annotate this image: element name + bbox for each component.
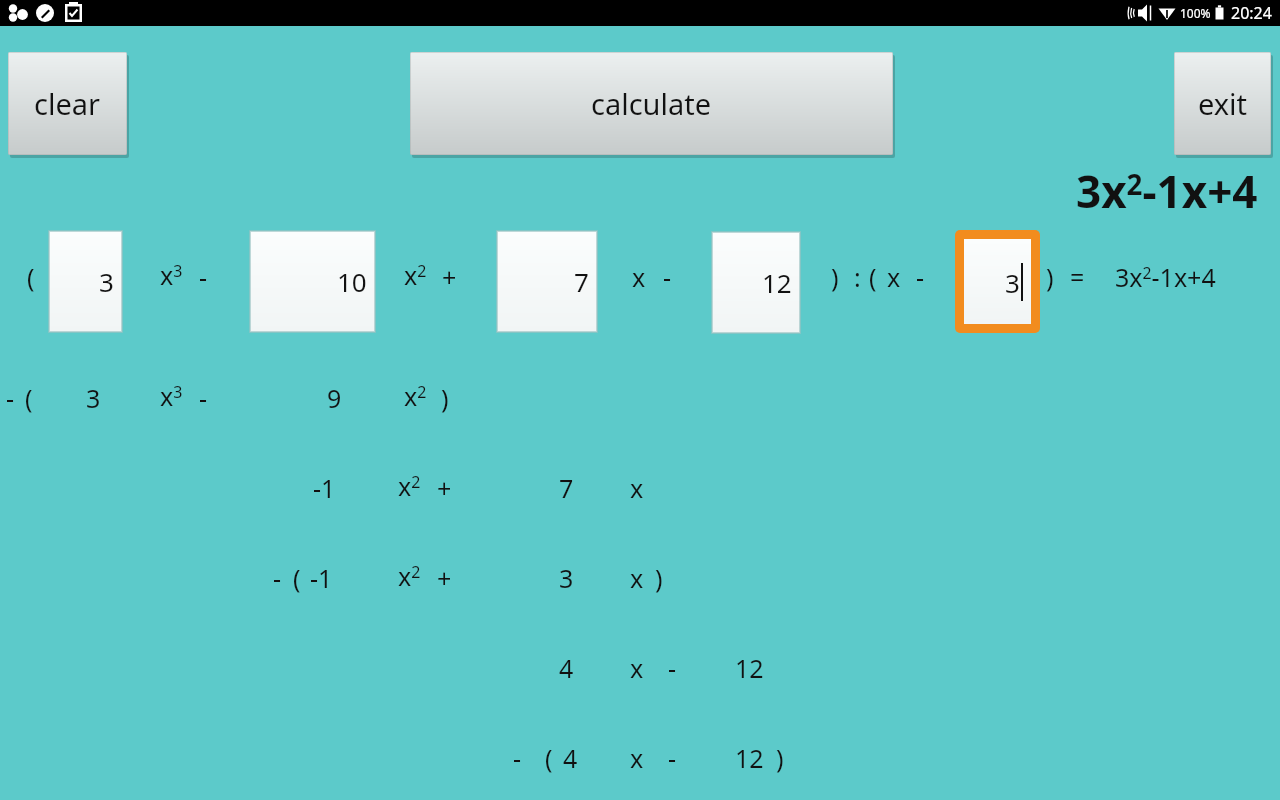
staticText: calculate — [591, 84, 712, 123]
button[interactable]: exit — [1174, 52, 1271, 155]
button[interactable]: 10 — [250, 231, 375, 332]
staticText: ( — [25, 381, 33, 415]
staticText: 9 — [327, 381, 342, 415]
staticText: = — [1070, 260, 1085, 294]
staticText: : — [854, 260, 861, 294]
staticText: ( — [27, 260, 35, 294]
staticText: ) — [441, 381, 449, 415]
staticText: 3 — [559, 561, 574, 595]
staticText: x2 — [398, 469, 421, 503]
staticText: x2 — [404, 379, 427, 413]
staticText: ( — [293, 561, 301, 595]
staticText: - — [199, 260, 208, 294]
staticText: 12 — [762, 265, 792, 300]
staticText: ) — [655, 561, 663, 595]
button[interactable]: clear — [8, 52, 127, 155]
staticText: 10 — [337, 264, 367, 299]
staticText: ) — [1046, 260, 1054, 294]
staticText: x — [630, 561, 644, 595]
staticText: -1 — [310, 561, 333, 595]
button[interactable]: calculate — [410, 52, 893, 155]
staticText: - — [199, 381, 208, 415]
staticText: - — [663, 260, 672, 294]
staticText: 3 — [86, 381, 101, 415]
staticText: ) — [776, 741, 784, 775]
staticText: - — [6, 381, 15, 415]
staticText: 3 — [1005, 265, 1020, 300]
staticText: x3 — [160, 258, 183, 292]
staticText: ( — [545, 741, 553, 775]
staticText: 3 — [99, 264, 114, 299]
button[interactable]: 7 — [497, 231, 597, 332]
button[interactable]: 12 — [712, 232, 800, 333]
staticText: - — [916, 260, 925, 294]
staticText: - — [668, 651, 677, 685]
button[interactable]: 3 — [49, 231, 122, 332]
staticText: + — [442, 260, 457, 294]
button[interactable]: 3 — [955, 230, 1040, 333]
staticText: 4 — [563, 741, 578, 775]
staticText: - — [273, 561, 282, 595]
staticText: clear — [34, 84, 101, 123]
staticText: x — [887, 260, 901, 294]
staticText: 12 — [735, 741, 764, 775]
staticText: x3 — [160, 379, 183, 413]
staticText: ) — [831, 260, 839, 294]
staticText: x — [630, 741, 644, 775]
staticText: -1 — [313, 471, 336, 505]
staticText: - — [513, 741, 522, 775]
staticText: + — [437, 561, 452, 595]
staticText: x — [632, 260, 646, 294]
staticText: 100% — [1180, 5, 1211, 21]
staticText: ( — [869, 260, 877, 294]
staticText: 7 — [574, 264, 589, 299]
other: clear — [8, 52, 127, 155]
staticText: 4 — [559, 651, 574, 685]
staticText: x — [630, 471, 644, 505]
staticText: x — [630, 651, 644, 685]
staticText: x2 — [398, 559, 421, 593]
staticText: 3x2-1x+4 — [1076, 161, 1258, 221]
staticText: + — [437, 471, 452, 505]
staticText: 3x2-1x+4 — [1115, 260, 1216, 294]
staticText: x2 — [404, 258, 427, 292]
staticText: 7 — [559, 471, 574, 505]
staticText: - — [668, 741, 677, 775]
staticText: 20:24 — [1231, 2, 1272, 24]
staticText: exit — [1198, 84, 1248, 123]
staticText: 12 — [735, 651, 764, 685]
